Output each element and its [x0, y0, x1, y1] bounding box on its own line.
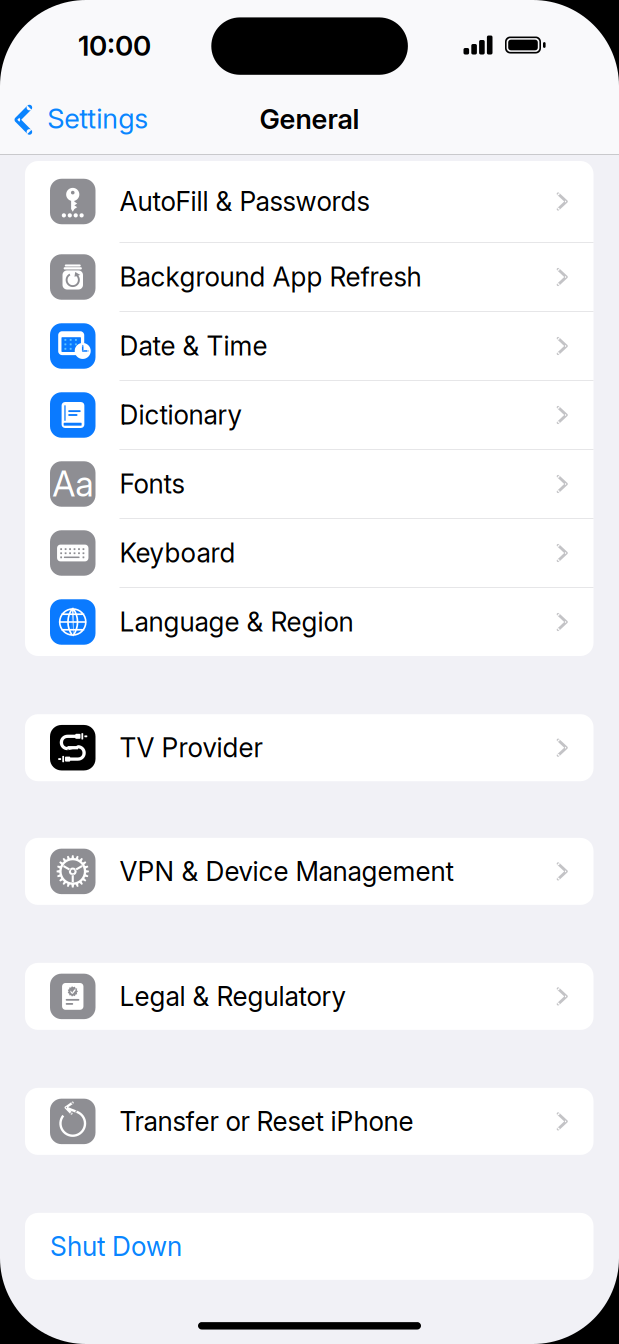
staticText: 10:00	[78, 28, 151, 62]
button[interactable]: Transfer or Reset iPhone	[25, 1088, 593, 1155]
button[interactable]: Legal & Regulatory	[25, 963, 593, 1030]
staticText: Legal & Regulatory	[119, 980, 345, 1012]
button[interactable]: Dictionary	[25, 381, 593, 449]
staticText: Language & Region	[119, 606, 353, 638]
button[interactable]: TV Provider	[25, 714, 593, 781]
staticText: VPN & Device Management	[119, 855, 453, 887]
button[interactable]: Aa	[25, 450, 593, 518]
button[interactable]: Language & Region	[25, 588, 593, 656]
button[interactable]: Background App Refresh	[25, 243, 593, 311]
button[interactable]: AutoFill & Passwords	[25, 161, 593, 242]
staticText: General	[259, 102, 359, 136]
staticText: Transfer or Reset iPhone	[119, 1105, 413, 1137]
staticText: Aa	[52, 463, 93, 505]
button[interactable]: Keyboard	[25, 519, 593, 587]
staticText: Background App Refresh	[119, 261, 421, 293]
staticText: Shut Down	[50, 1230, 182, 1262]
staticText: Fonts	[119, 468, 184, 500]
staticText: Settings	[47, 102, 148, 135]
button[interactable]: Settings	[0, 88, 158, 154]
staticText: TV Provider	[119, 732, 262, 764]
staticText: Keyboard	[119, 537, 235, 569]
button[interactable]: VPN & Device Management	[25, 838, 593, 905]
button[interactable]: Shut Down	[25, 1213, 593, 1280]
button[interactable]: Date & Time	[25, 312, 593, 380]
staticText: Dictionary	[119, 399, 241, 431]
staticText: AutoFill & Passwords	[119, 185, 369, 217]
staticText: Date & Time	[119, 330, 267, 362]
